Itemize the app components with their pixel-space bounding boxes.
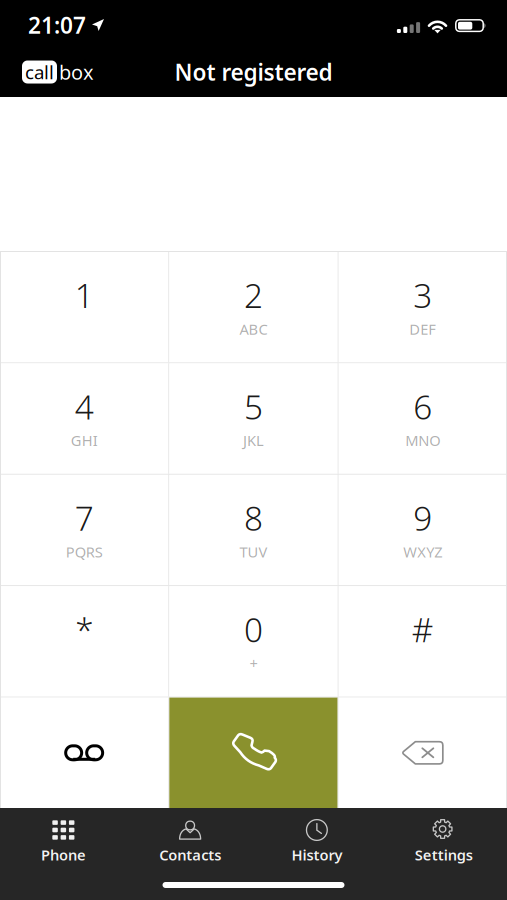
button[interactable]: * [0, 586, 168, 697]
staticText: JKL [243, 431, 264, 450]
button[interactable]: Call [169, 698, 338, 808]
staticText: 8 [244, 496, 263, 540]
button[interactable]: # [339, 586, 507, 697]
staticText: + [249, 653, 257, 673]
staticText: WXYZ [403, 542, 442, 562]
button[interactable]: 0 [169, 586, 338, 697]
staticText: 3 [413, 273, 432, 317]
staticText: PQRS [66, 542, 103, 562]
staticText: * [75, 607, 93, 651]
button[interactable]: Contacts [127, 808, 254, 869]
staticText: GHI [71, 431, 98, 450]
button[interactable]: 5 [169, 363, 338, 474]
button[interactable]: Phone [0, 808, 127, 869]
staticText: History [291, 845, 342, 864]
staticText: TUV [239, 542, 267, 562]
button[interactable]: Delete [339, 698, 507, 808]
button[interactable]: 6 [339, 363, 507, 474]
button[interactable]: History [253, 808, 380, 869]
staticText: Settings [415, 845, 473, 864]
staticText: MNO [405, 431, 440, 450]
button[interactable]: 1 [0, 252, 168, 362]
staticText: 7 [75, 496, 94, 540]
staticText: Not registered [174, 57, 332, 87]
staticText: call [25, 60, 54, 84]
staticText: 0 [244, 607, 263, 651]
staticText: ABC [239, 319, 267, 339]
button[interactable]: 9 [339, 475, 507, 585]
staticText: 1 [75, 273, 94, 317]
button[interactable]: 8 [169, 475, 338, 585]
button[interactable]: 4 [0, 363, 168, 474]
button[interactable]: Voicemail [0, 698, 168, 808]
staticText: Phone [41, 845, 86, 864]
staticText: # [412, 607, 434, 651]
staticText: 5 [244, 384, 263, 429]
button[interactable]: 7 [0, 475, 168, 585]
staticText: 2 [244, 273, 263, 317]
button[interactable]: 2 [169, 252, 338, 362]
staticText: Contacts [159, 845, 221, 864]
staticText: 21:07 [28, 10, 86, 40]
button[interactable]: 3 [339, 252, 507, 362]
button[interactable]: Settings [380, 808, 507, 869]
staticText: 6 [413, 384, 432, 429]
staticText: 9 [413, 496, 432, 540]
staticText: DEF [409, 319, 436, 339]
staticText: box [59, 59, 94, 85]
staticText: 4 [75, 384, 94, 429]
